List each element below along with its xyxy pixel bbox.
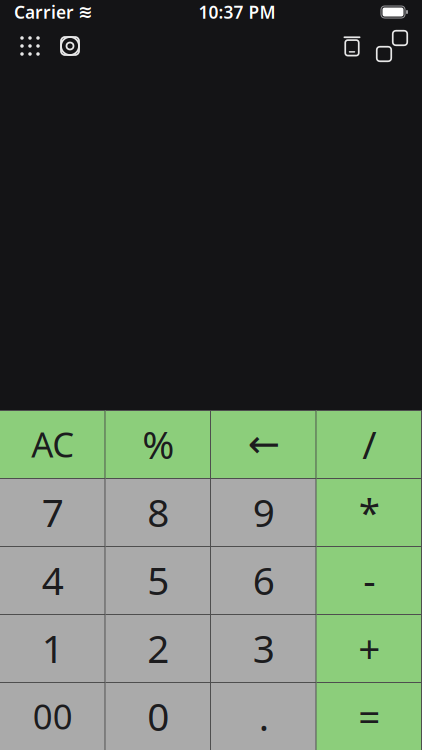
button[interactable]: 3 bbox=[211, 614, 316, 682]
staticText: 5 bbox=[147, 554, 169, 606]
button[interactable]: 00 bbox=[0, 682, 105, 750]
staticText: 8 bbox=[147, 486, 169, 538]
staticText: 3 bbox=[253, 622, 275, 674]
button[interactable]: 6 bbox=[211, 546, 316, 614]
button[interactable]: 9 bbox=[211, 478, 316, 546]
button[interactable]: * bbox=[316, 478, 422, 546]
button[interactable]: 0 bbox=[105, 682, 211, 750]
staticText: 4 bbox=[42, 554, 64, 606]
button[interactable]: + bbox=[316, 614, 422, 682]
staticText: AC bbox=[31, 421, 74, 467]
staticText: 2 bbox=[147, 622, 169, 674]
button[interactable]: Apps bbox=[12, 28, 48, 64]
button[interactable]: ← bbox=[211, 410, 316, 478]
button[interactable]: AC bbox=[0, 410, 105, 478]
staticText: 10:37 PM bbox=[198, 0, 275, 23]
button[interactable]: - bbox=[316, 546, 422, 614]
staticText: / bbox=[362, 418, 376, 470]
staticText: . bbox=[259, 690, 269, 742]
button[interactable]: 8 bbox=[105, 478, 211, 546]
staticText: - bbox=[363, 554, 375, 606]
button[interactable]: 5 bbox=[105, 546, 211, 614]
button[interactable]: / bbox=[316, 410, 422, 478]
staticText: 6 bbox=[253, 554, 275, 606]
button[interactable]: . bbox=[211, 682, 316, 750]
staticText: + bbox=[358, 622, 380, 674]
staticText: 9 bbox=[253, 486, 275, 538]
button[interactable]: % bbox=[105, 410, 211, 478]
staticText: ≋ bbox=[78, 2, 93, 22]
button[interactable]: Copy bbox=[374, 28, 410, 64]
button[interactable]: Clear bbox=[334, 28, 370, 64]
button[interactable]: 1 bbox=[0, 614, 105, 682]
staticText: = bbox=[358, 690, 380, 742]
staticText: Carrier bbox=[14, 0, 74, 23]
staticText: 0 bbox=[147, 690, 169, 742]
button[interactable]: = bbox=[316, 682, 422, 750]
staticText: * bbox=[359, 486, 380, 538]
staticText: 7 bbox=[42, 486, 64, 538]
button[interactable]: Settings bbox=[52, 28, 88, 64]
button[interactable]: 7 bbox=[0, 478, 105, 546]
staticText: 00 bbox=[33, 693, 73, 739]
staticText: % bbox=[142, 418, 174, 470]
staticText: ← bbox=[248, 422, 280, 466]
button[interactable]: 4 bbox=[0, 546, 105, 614]
staticText: 1 bbox=[42, 622, 64, 674]
button[interactable]: 2 bbox=[105, 614, 211, 682]
